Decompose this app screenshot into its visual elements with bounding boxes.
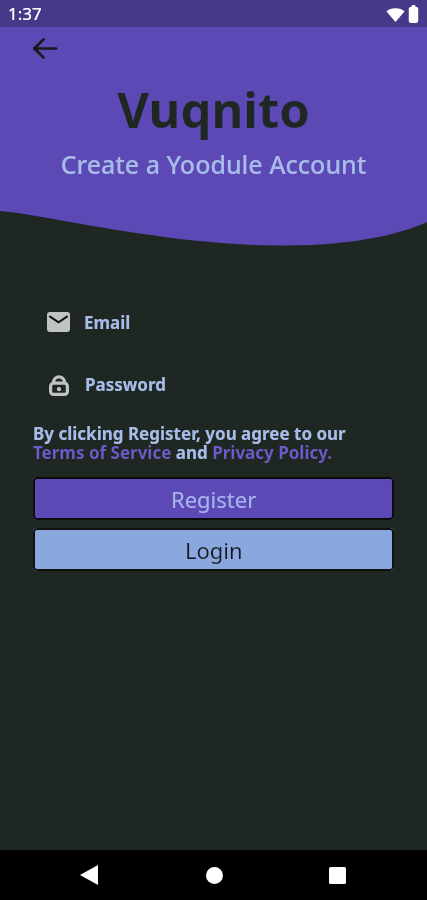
staticText: Create a Yoodule Account [0,147,427,181]
staticText: Email [84,311,131,334]
staticText: Password [85,373,166,396]
button[interactable]: Login [33,528,394,571]
button[interactable]: Home [194,855,234,895]
button[interactable]: Password [49,372,427,396]
button[interactable]: Email [47,310,427,334]
button[interactable]: Back [24,28,64,68]
staticText: Register [171,484,257,514]
staticText: By clicking Register, you agree to our [33,422,346,445]
button[interactable]: Back [69,855,109,895]
button[interactable]: Recent apps [317,855,357,895]
button[interactable]: Terms of Service and Privacy Policy. [33,441,333,464]
button[interactable]: Register [33,477,394,520]
staticText: Login [185,535,243,565]
staticText: Vuqnito [0,76,427,143]
staticText: 1:37 [8,2,42,25]
